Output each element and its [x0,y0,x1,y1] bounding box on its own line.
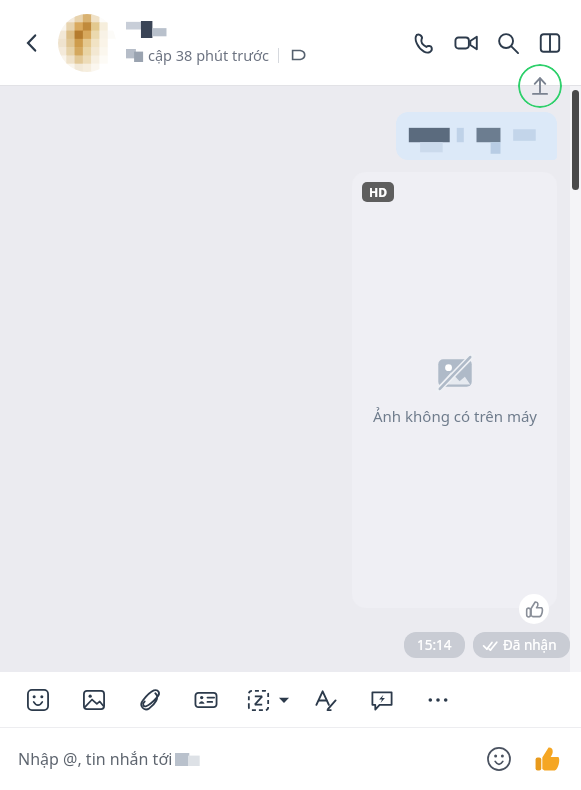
button[interactable]: Image [66,672,122,728]
button[interactable]: Emoji [479,739,519,779]
button[interactable]: Attach [122,672,178,728]
button[interactable]: HD [352,172,557,608]
button[interactable]: Quick reply [354,672,410,728]
button[interactable]: Sticker [10,672,66,728]
button[interactable]: Nhập @, tin nhắn tới [18,748,479,770]
button[interactable]: Format text [298,672,354,728]
staticText: cập 38 phút trước [148,45,269,65]
button[interactable]: 15:14 [404,632,465,658]
button[interactable]: More [410,672,466,728]
button[interactable]: Back [14,25,50,61]
staticText: HD [369,184,387,200]
staticText: 15:14 [417,636,452,654]
staticText: Nhập @, tin nhắn tới [18,748,173,770]
button[interactable]: Đã nhận [473,632,570,658]
staticText: Đã nhận [503,636,557,654]
button[interactable]: Send like [527,739,567,779]
button[interactable]: Like reaction [519,594,549,624]
button[interactable] [396,112,557,160]
button[interactable]: Profile photo [58,14,116,72]
button[interactable]: Zalo sticker [234,680,294,720]
button[interactable]: Tag [289,45,309,65]
staticText: Ảnh không có trên máy [373,406,537,426]
button[interactable]: Search [487,22,529,64]
button[interactable]: Contact card [178,672,234,728]
button[interactable]: Panel [529,22,571,64]
button[interactable]: Upload [518,64,562,108]
button[interactable]: Video call [445,22,487,64]
button[interactable]: Call [403,22,445,64]
